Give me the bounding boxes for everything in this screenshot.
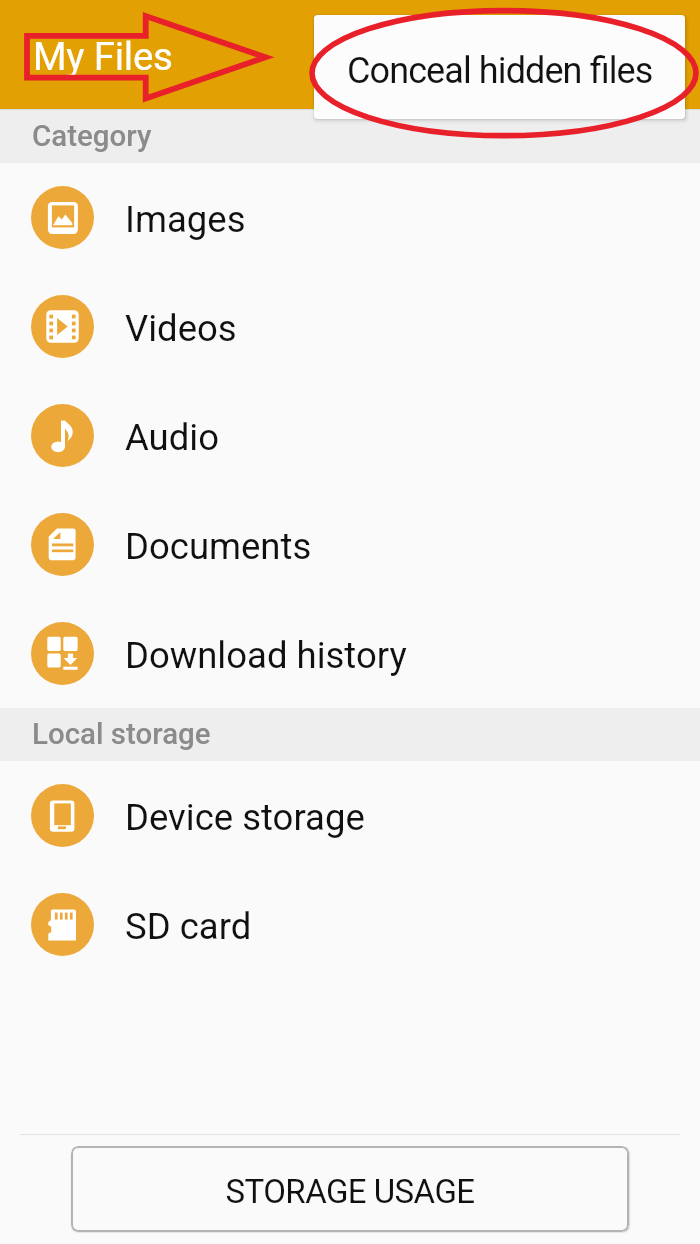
other: Videos — [31, 295, 94, 358]
button[interactable]: My Files — [0, 0, 700, 109]
button[interactable]: Download history — [0, 599, 700, 708]
other: SD card — [31, 893, 94, 956]
staticText: Audio — [125, 416, 220, 459]
button[interactable]: SD card — [0, 870, 700, 979]
other: Audio — [31, 404, 94, 467]
staticText: Videos — [125, 307, 237, 350]
staticText: SD card — [125, 905, 252, 948]
other: Documents — [31, 513, 94, 576]
button[interactable]: Audio — [0, 381, 700, 490]
staticText: Download history — [125, 634, 407, 677]
staticText: My Files — [33, 34, 173, 79]
button[interactable]: Device storage — [0, 761, 700, 870]
button[interactable]: Videos — [0, 272, 700, 381]
staticText: Local storage — [32, 717, 211, 752]
staticText: Category — [32, 119, 152, 154]
button[interactable]: Conceal hidden files — [314, 15, 685, 119]
other: Images — [31, 186, 94, 249]
staticText: Conceal hidden files — [347, 50, 653, 92]
button[interactable]: STORAGE USAGE — [71, 1146, 629, 1232]
other: Download history — [31, 622, 94, 685]
staticText: Documents — [125, 525, 312, 568]
staticText: Images — [125, 198, 246, 241]
other: Device storage — [31, 784, 94, 847]
button[interactable]: Images — [0, 163, 700, 272]
staticText: STORAGE USAGE — [225, 1172, 475, 1211]
button[interactable]: Documents — [0, 490, 700, 599]
staticText: Device storage — [125, 796, 365, 839]
